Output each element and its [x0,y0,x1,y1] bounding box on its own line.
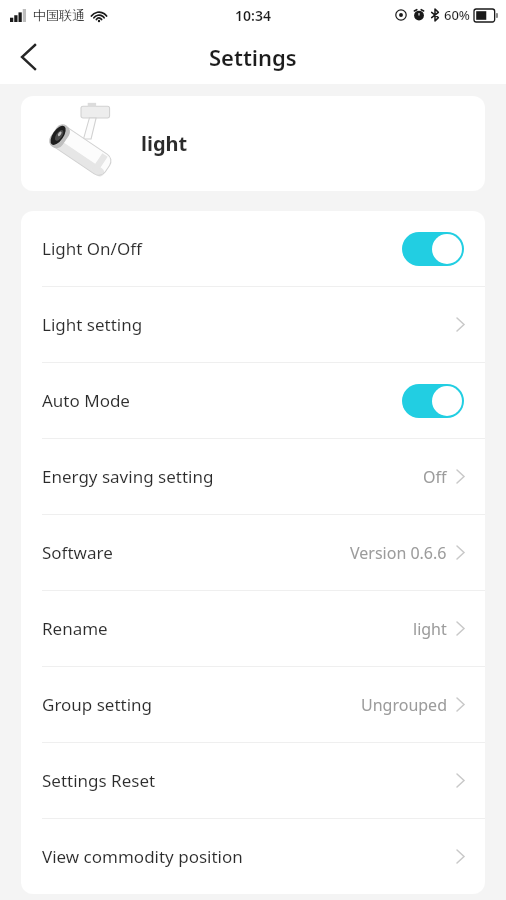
staticText: 60% [444,6,470,24]
staticText: 中国联通 [33,7,85,23]
button[interactable]: View commodity position [21,819,485,894]
button[interactable]: Auto Mode toggle [402,384,464,418]
button[interactable]: Rename [21,591,485,666]
staticText: Off [423,466,447,488]
staticText: Ungrouped [361,694,447,716]
staticText: Auto Mode [42,389,402,412]
button[interactable]: Software [21,515,485,590]
button[interactable]: Auto Mode [21,363,485,438]
button[interactable]: Group setting [21,667,485,742]
staticText: 10:34 [235,6,271,25]
staticText: light [141,130,188,157]
button[interactable]: Light setting [21,287,485,362]
button[interactable]: Light On/Off toggle [402,232,464,266]
staticText: Rename [42,617,413,640]
staticText: Software [42,541,350,564]
staticText: Light On/Off [42,237,402,260]
button[interactable]: Settings Reset [21,743,485,818]
staticText: light [413,618,447,640]
button[interactable]: Back [4,33,52,81]
staticText: Energy saving setting [42,465,423,488]
staticText: Light setting [42,313,457,336]
button[interactable]: light [21,96,485,191]
staticText: Group setting [42,693,361,716]
button[interactable]: Light On/Off [21,211,485,286]
staticText: Settings [209,42,297,72]
staticText: Version 0.6.6 [350,542,447,564]
staticText: Settings Reset [42,769,457,792]
staticText: View commodity position [42,845,457,868]
button[interactable]: Energy saving setting [21,439,485,514]
